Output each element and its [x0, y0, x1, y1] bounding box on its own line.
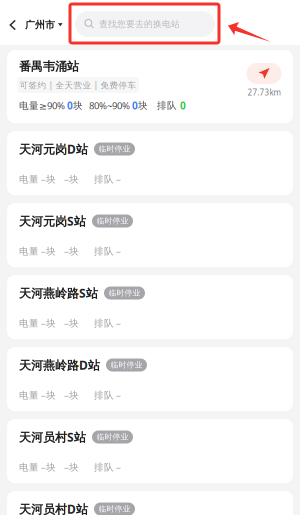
staticText: 广州市 — [25, 19, 55, 31]
staticText: 天河燕岭路S站 — [19, 285, 98, 301]
staticText: 天河元岗S站 — [19, 213, 86, 229]
staticText: 天河燕岭路D站 — [19, 357, 100, 373]
staticText: 电量 –块 –块 排队 – — [19, 316, 121, 330]
staticText: 查找您要去的换电站 — [99, 18, 180, 30]
button[interactable]: 番禺韦涌站 — [7, 50, 293, 123]
staticText: 临时停业 — [98, 144, 130, 154]
staticText: 天河元岗D站 — [19, 141, 88, 157]
staticText: 电量 –块 –块 排队 – — [19, 244, 121, 258]
staticText: 电量 –块 –块 排队 – — [19, 460, 121, 474]
staticText: 块 — [138, 99, 157, 112]
staticText: 番禺韦涌站 — [19, 59, 79, 74]
button[interactable]: 天河元岗D站 — [7, 131, 293, 195]
staticText: 临时停业 — [96, 216, 128, 226]
button[interactable]: 天河员村D站 — [7, 491, 293, 515]
staticText: 天河员村S站 — [19, 429, 86, 445]
staticText: 临时停业 — [96, 432, 128, 442]
button[interactable]: 查找您要去的换电站 — [75, 11, 215, 37]
button[interactable]: 天河员村S站 — [7, 419, 293, 483]
staticText: 电量≥90% — [19, 99, 67, 112]
staticText: 临时停业 — [110, 360, 142, 370]
staticText: 0 — [180, 99, 186, 112]
button[interactable]: 广州市 — [0, 10, 70, 40]
staticText: 27.73km — [247, 87, 280, 98]
button[interactable]: 天河燕岭路S站 — [7, 275, 293, 339]
staticText: 天河员村D站 — [19, 501, 88, 515]
staticText: 电量 –块 –块 排队 – — [19, 388, 121, 402]
staticText: 0 — [132, 99, 138, 112]
staticText: 块 — [73, 99, 89, 112]
staticText: 80%~90% — [89, 99, 132, 112]
staticText: 可签约 | 全天营业 | 免费停车 — [19, 79, 136, 91]
staticText: 临时停业 — [98, 504, 130, 514]
button[interactable]: 天河元岗S站 — [7, 203, 293, 267]
staticText: 0 — [67, 99, 73, 112]
staticText: 临时停业 — [108, 288, 140, 298]
button[interactable]: 天河燕岭路D站 — [7, 347, 293, 411]
staticText: 排队 — [157, 99, 180, 112]
staticText: 电量 –块 –块 排队 – — [19, 172, 121, 186]
